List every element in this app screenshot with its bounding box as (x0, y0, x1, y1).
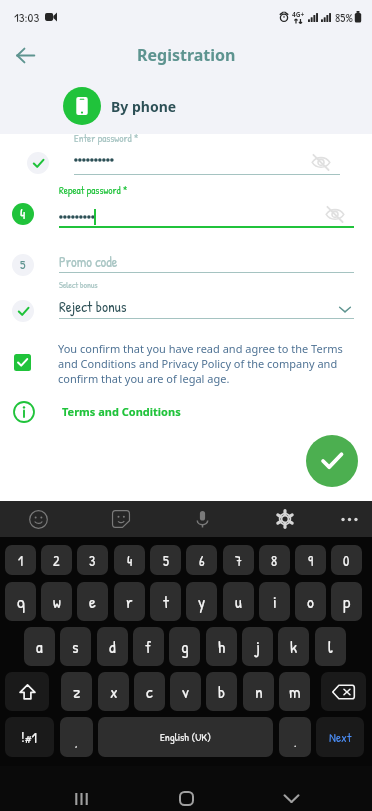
button[interactable]: Emoji (21, 502, 55, 536)
button[interactable]: Confirm registration (306, 435, 358, 487)
staticText: w (53, 590, 61, 613)
button[interactable]: 0 (331, 545, 362, 575)
staticText: b (218, 680, 226, 703)
button[interactable]: o (295, 582, 326, 621)
staticText: . (294, 736, 297, 751)
button[interactable]: !#1 (5, 717, 54, 757)
button[interactable]: u (223, 582, 254, 621)
staticText: 13:03 (14, 8, 40, 26)
staticText: g (181, 635, 189, 658)
button[interactable]: r (114, 582, 145, 621)
staticText: v (182, 680, 189, 703)
button[interactable]: 6 (186, 545, 217, 575)
button[interactable]: 9 (295, 545, 326, 575)
button[interactable]: 8 (259, 545, 290, 575)
button[interactable]: w (41, 582, 72, 621)
staticText: e (89, 590, 96, 613)
button[interactable]: 5 (150, 545, 181, 575)
staticText: 4G+ (292, 10, 305, 19)
button[interactable]: m (279, 672, 310, 711)
staticText: By phone (111, 97, 177, 116)
button[interactable]: Recent apps (58, 776, 104, 811)
button[interactable]: z (61, 672, 92, 711)
button[interactable]: Keyboard settings (268, 502, 302, 536)
button[interactable]: x (98, 672, 129, 711)
staticText: u (235, 590, 242, 613)
staticText: 9 (308, 551, 314, 570)
button[interactable]: q (5, 582, 36, 621)
button[interactable]: s (60, 627, 91, 666)
staticText: Enter password * (74, 131, 139, 145)
button[interactable]: 7 (223, 545, 254, 575)
staticText: Select bonus (59, 279, 98, 291)
button[interactable]: Terms and Conditions (62, 404, 181, 419)
staticText: 0 (343, 551, 350, 570)
button[interactable]: c (134, 672, 165, 711)
button[interactable]: Show password (311, 152, 331, 172)
staticText: y (198, 590, 206, 613)
button[interactable]: h (206, 627, 237, 666)
button[interactable]: English (UK) (98, 717, 273, 757)
button[interactable]: Home (163, 776, 209, 811)
button[interactable]: t (150, 582, 181, 621)
button[interactable]: More options (332, 502, 366, 536)
button[interactable]: 2 (41, 545, 72, 575)
staticText: 6 (199, 551, 205, 570)
button[interactable]: Shift (5, 672, 49, 711)
staticText: s (72, 635, 79, 658)
button[interactable]: Accept terms and conditions (14, 354, 31, 371)
button[interactable]: , (60, 717, 93, 757)
staticText: z (73, 680, 81, 703)
button[interactable]: b (206, 672, 237, 711)
staticText: , (75, 736, 78, 751)
button[interactable]: e (77, 582, 108, 621)
staticText: Next (329, 728, 352, 746)
staticText: Registration (137, 44, 236, 66)
staticText: h (218, 635, 226, 658)
staticText: q (17, 590, 25, 613)
staticText: 4 (127, 551, 133, 570)
staticText: f (145, 635, 152, 658)
staticText: !#1 (21, 727, 38, 747)
staticText: t (163, 590, 169, 613)
button[interactable]: p (331, 582, 362, 621)
button[interactable]: Voice input (185, 502, 219, 536)
staticText: 3 (89, 551, 96, 570)
button[interactable]: g (169, 627, 200, 666)
button[interactable]: n (243, 672, 274, 711)
staticText: p (343, 590, 351, 613)
button[interactable]: v (170, 672, 201, 711)
button[interactable]: Information (13, 401, 35, 423)
button[interactable]: f (133, 627, 164, 666)
staticText: r (126, 590, 133, 613)
staticText: 8 (271, 551, 278, 570)
button[interactable]: k (278, 627, 309, 666)
button[interactable]: a (24, 627, 55, 666)
staticText: o (307, 590, 314, 613)
button[interactable]: Select bonus (336, 300, 354, 318)
button[interactable]: Next (316, 717, 364, 757)
staticText: x (110, 680, 118, 703)
staticText: k (290, 635, 298, 658)
button[interactable]: Hide keyboard (268, 776, 314, 811)
button[interactable]: d (97, 627, 128, 666)
staticText: a (36, 635, 43, 658)
staticText: m (289, 680, 301, 703)
button[interactable]: j (242, 627, 273, 666)
button[interactable]: Back (8, 38, 42, 72)
button[interactable]: Show repeated password (325, 204, 345, 224)
button[interactable]: 3 (77, 545, 108, 575)
staticText: 85% (335, 9, 353, 25)
button[interactable]: 4 (114, 545, 145, 575)
button[interactable]: 1 (5, 545, 36, 575)
button[interactable]: Backspace (321, 672, 366, 711)
button[interactable]: l (315, 627, 346, 666)
button[interactable]: Stickers (104, 502, 138, 536)
staticText: d (109, 635, 116, 658)
button[interactable]: i (259, 582, 290, 621)
staticText: English (UK) (160, 730, 211, 745)
staticText: 5 (163, 551, 169, 570)
button[interactable]: . (279, 717, 311, 757)
staticText: Repeat password * (59, 183, 128, 197)
button[interactable]: y (186, 582, 217, 621)
